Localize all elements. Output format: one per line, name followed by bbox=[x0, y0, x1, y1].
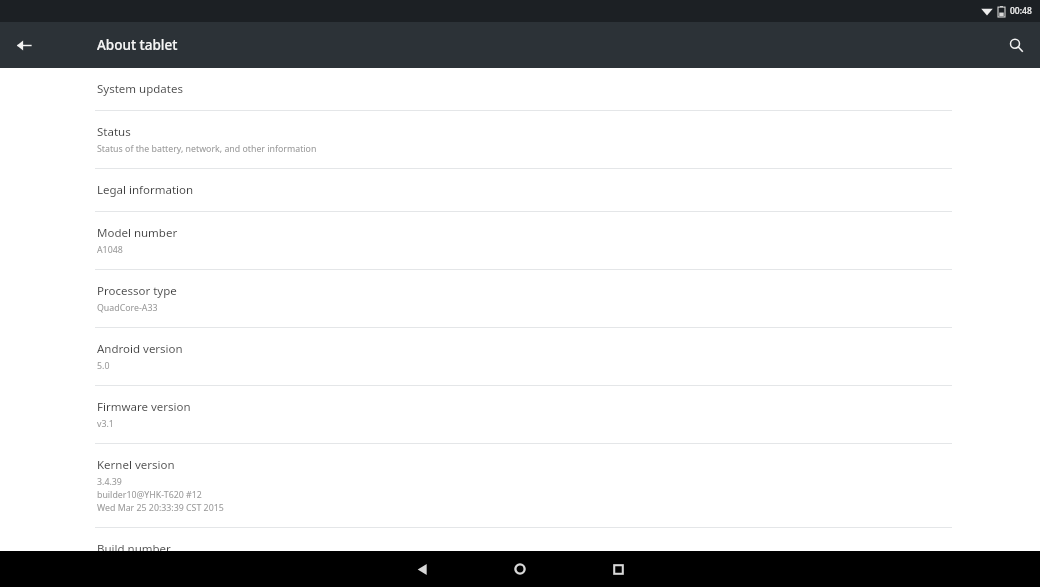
button[interactable]: Search bbox=[996, 25, 1036, 65]
staticText: Build number bbox=[97, 541, 171, 557]
staticText: Status bbox=[97, 124, 131, 140]
staticText: Processor type bbox=[97, 283, 177, 299]
staticText: builder10@YHK-T620 #12 bbox=[97, 489, 202, 501]
button[interactable]: Recent apps bbox=[570, 551, 666, 587]
button[interactable]: Kernel version bbox=[0, 444, 1040, 527]
staticText: System updates bbox=[97, 81, 183, 97]
staticText: Android version bbox=[97, 341, 183, 357]
staticText: Firmware version bbox=[97, 399, 191, 415]
staticText: v3.1 bbox=[97, 418, 114, 430]
staticText: 5.0 bbox=[97, 360, 110, 372]
staticText: Wed Mar 25 20:33:39 CST 2015 bbox=[97, 502, 224, 514]
button[interactable]: Build number bbox=[0, 528, 1040, 585]
staticText: 3.4.39 bbox=[97, 476, 122, 488]
staticText: Status of the battery, network, and othe… bbox=[97, 143, 317, 155]
button[interactable]: System updates bbox=[0, 68, 1040, 110]
button[interactable]: Back bbox=[374, 551, 470, 587]
staticText: Model number bbox=[97, 225, 178, 241]
staticText: A1048 bbox=[97, 244, 123, 256]
staticText: QuadCore-A33 bbox=[97, 302, 158, 314]
button[interactable]: Legal information bbox=[0, 169, 1040, 211]
staticText: About tablet bbox=[97, 36, 178, 54]
button[interactable]: Model number bbox=[0, 212, 1040, 269]
button[interactable]: Status bbox=[0, 111, 1040, 168]
button[interactable]: Home bbox=[472, 551, 568, 587]
button[interactable]: Processor type bbox=[0, 270, 1040, 327]
staticText: Legal information bbox=[97, 182, 194, 198]
button[interactable]: Firmware version bbox=[0, 386, 1040, 443]
button[interactable]: Navigate up bbox=[4, 25, 44, 65]
staticText: Kernel version bbox=[97, 457, 175, 473]
staticText: 00:48 bbox=[1010, 5, 1032, 17]
button[interactable]: Android version bbox=[0, 328, 1040, 385]
